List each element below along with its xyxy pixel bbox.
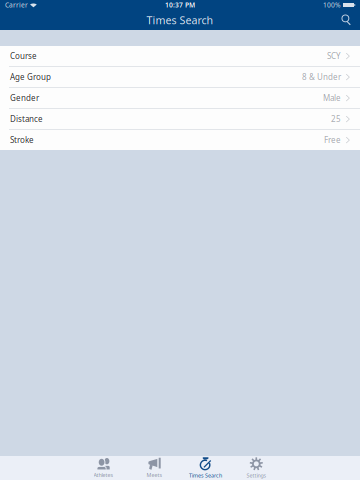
button[interactable]: Settings xyxy=(231,456,282,480)
staticText: Distance xyxy=(10,114,43,124)
staticText: Male xyxy=(323,93,341,103)
button[interactable]: Distance xyxy=(0,109,360,129)
button[interactable]: Gender xyxy=(0,88,360,108)
staticText: Course xyxy=(10,51,37,61)
staticText: Age Group xyxy=(10,72,51,82)
button[interactable]: Search xyxy=(334,11,360,29)
staticText: Stroke xyxy=(10,135,34,145)
button[interactable]: Times Search xyxy=(180,456,231,480)
staticText: 100% xyxy=(323,1,341,9)
button[interactable]: Course xyxy=(0,46,360,66)
staticText: Carrier xyxy=(5,1,28,9)
button[interactable]: Stroke xyxy=(0,130,360,150)
button[interactable]: Meets xyxy=(129,456,180,480)
staticText: Meets xyxy=(146,471,162,479)
staticText: Times Search xyxy=(189,472,222,479)
button[interactable]: Athletes xyxy=(78,456,129,480)
staticText: Free xyxy=(324,135,341,145)
staticText: 25 xyxy=(331,114,341,124)
staticText: Times Search xyxy=(146,13,213,27)
staticText: Settings xyxy=(246,472,266,479)
button[interactable]: Age Group xyxy=(0,67,360,87)
staticText: Gender xyxy=(10,93,39,103)
staticText: Athletes xyxy=(93,471,113,479)
staticText: 10:37 PM xyxy=(165,1,195,9)
staticText: SCY xyxy=(327,51,341,61)
staticText: 8 & Under xyxy=(302,72,341,82)
